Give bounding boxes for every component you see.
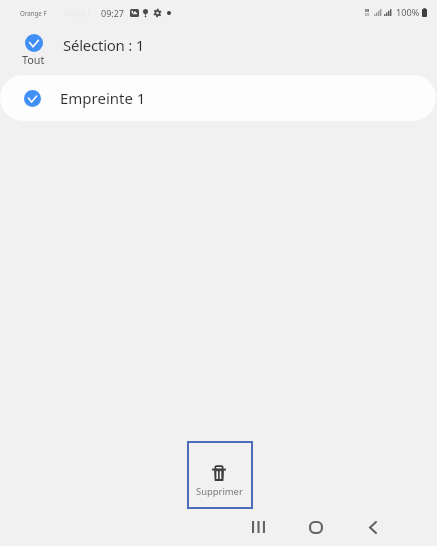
staticText: 100% <box>396 6 420 19</box>
staticText: Tout <box>22 52 45 67</box>
staticText: 09:27 <box>101 7 125 19</box>
button[interactable]: Recents <box>240 509 276 545</box>
staticText: Orange F <box>20 9 47 17</box>
button[interactable]: Tout <box>14 31 53 68</box>
staticText: Sélection : 1 <box>63 35 145 55</box>
button[interactable]: Supprimer <box>187 441 253 509</box>
button[interactable]: Home <box>298 509 334 545</box>
button[interactable]: Empreinte 1 <box>0 75 436 121</box>
button[interactable]: Back <box>355 509 391 545</box>
staticText: Empreinte 1 <box>60 88 146 108</box>
staticText: Supprimer <box>196 485 243 498</box>
